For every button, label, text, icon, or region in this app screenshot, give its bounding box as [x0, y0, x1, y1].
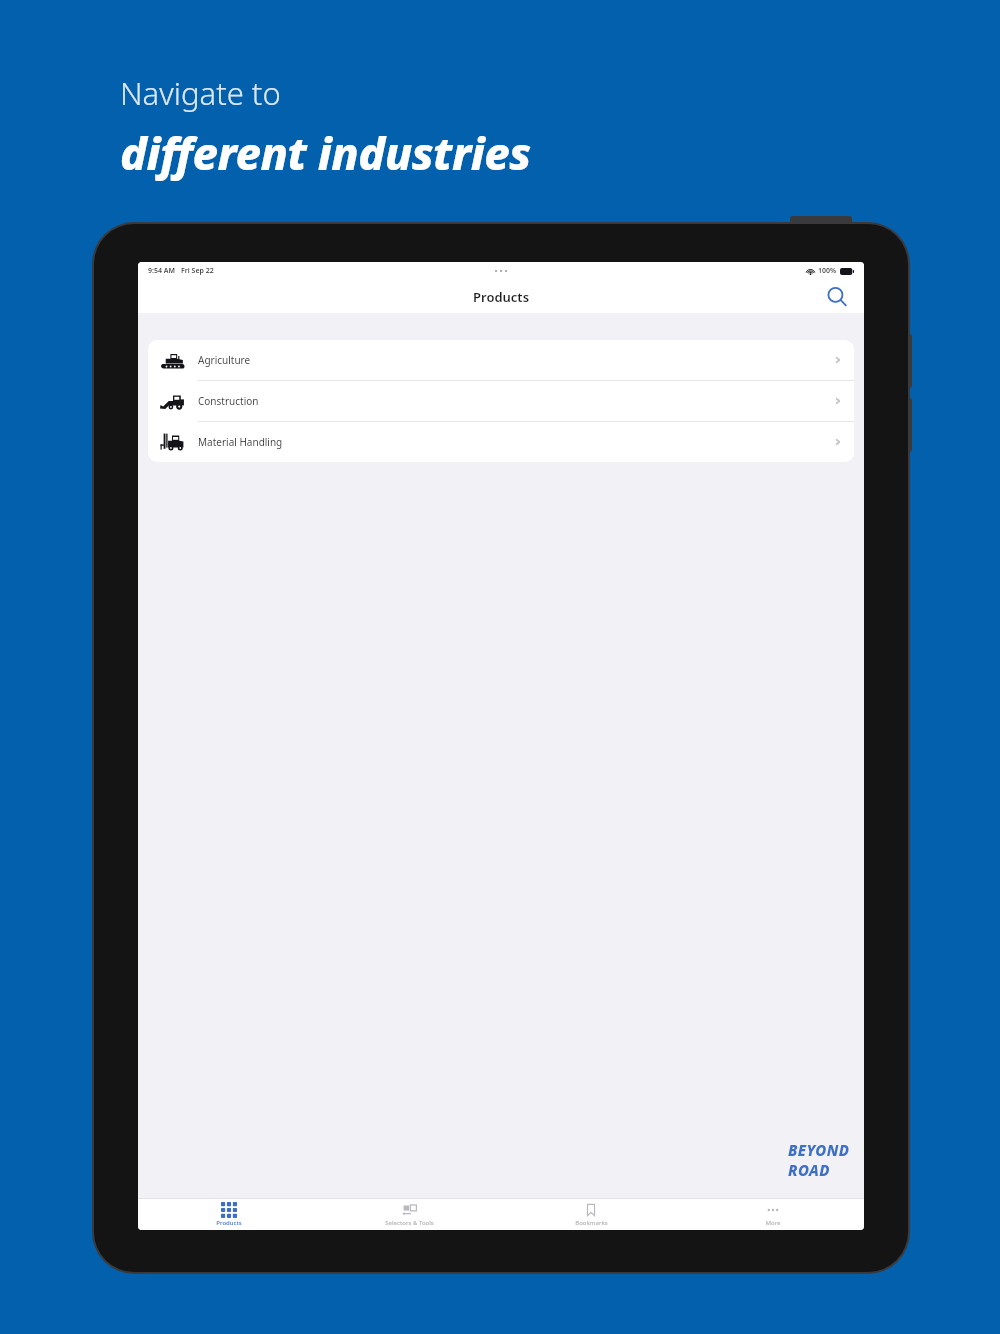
- button[interactable]: Construction: [148, 381, 854, 422]
- staticText: BEYOND: [788, 1140, 850, 1160]
- staticText: Selectors & Tools: [385, 1219, 434, 1227]
- button[interactable]: More: [682, 1199, 864, 1230]
- staticText: Navigate to: [120, 72, 281, 114]
- staticText: Products: [473, 288, 530, 306]
- staticText: ROAD: [788, 1160, 830, 1180]
- button[interactable]: Agriculture: [148, 340, 854, 381]
- staticText: More: [765, 1219, 781, 1227]
- staticText: Material Handling: [198, 435, 283, 449]
- staticText: Bookmarks: [575, 1219, 608, 1227]
- button[interactable]: Material Handling: [148, 422, 854, 462]
- staticText: Agriculture: [198, 353, 251, 367]
- staticText: different industries: [120, 122, 531, 183]
- staticText: 9:54 AM: [148, 266, 175, 276]
- button[interactable]: Search: [824, 284, 850, 310]
- button[interactable]: Selectors & Tools: [319, 1199, 500, 1230]
- staticText: Products: [216, 1219, 242, 1227]
- button[interactable]: Products: [138, 1199, 319, 1230]
- staticText: 100%: [818, 266, 837, 276]
- staticText: Construction: [198, 394, 259, 408]
- button[interactable]: Bookmarks: [500, 1199, 682, 1230]
- staticText: Fri Sep 22: [181, 266, 214, 276]
